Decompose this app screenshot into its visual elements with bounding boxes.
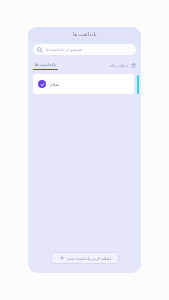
staticText: جستجو در یادداشت ها <box>46 47 83 52</box>
button[interactable]: سلام <box>33 74 134 94</box>
staticText: سطل زباله <box>110 63 129 68</box>
staticText: اضافه کردن یادداشت جدید <box>67 256 111 261</box>
staticText: سلام <box>50 82 60 87</box>
button[interactable]: Add <box>51 252 119 264</box>
staticText: یادداشت ها <box>35 61 56 67</box>
button[interactable]: سطل زباله <box>110 63 136 68</box>
other: Trash <box>131 63 136 68</box>
staticText: یادداشت ها <box>73 31 97 38</box>
other: Add <box>60 256 64 260</box>
other: Search <box>37 47 43 53</box>
button[interactable]: یادداشت ها <box>33 61 58 70</box>
button[interactable]: Search <box>33 44 136 55</box>
